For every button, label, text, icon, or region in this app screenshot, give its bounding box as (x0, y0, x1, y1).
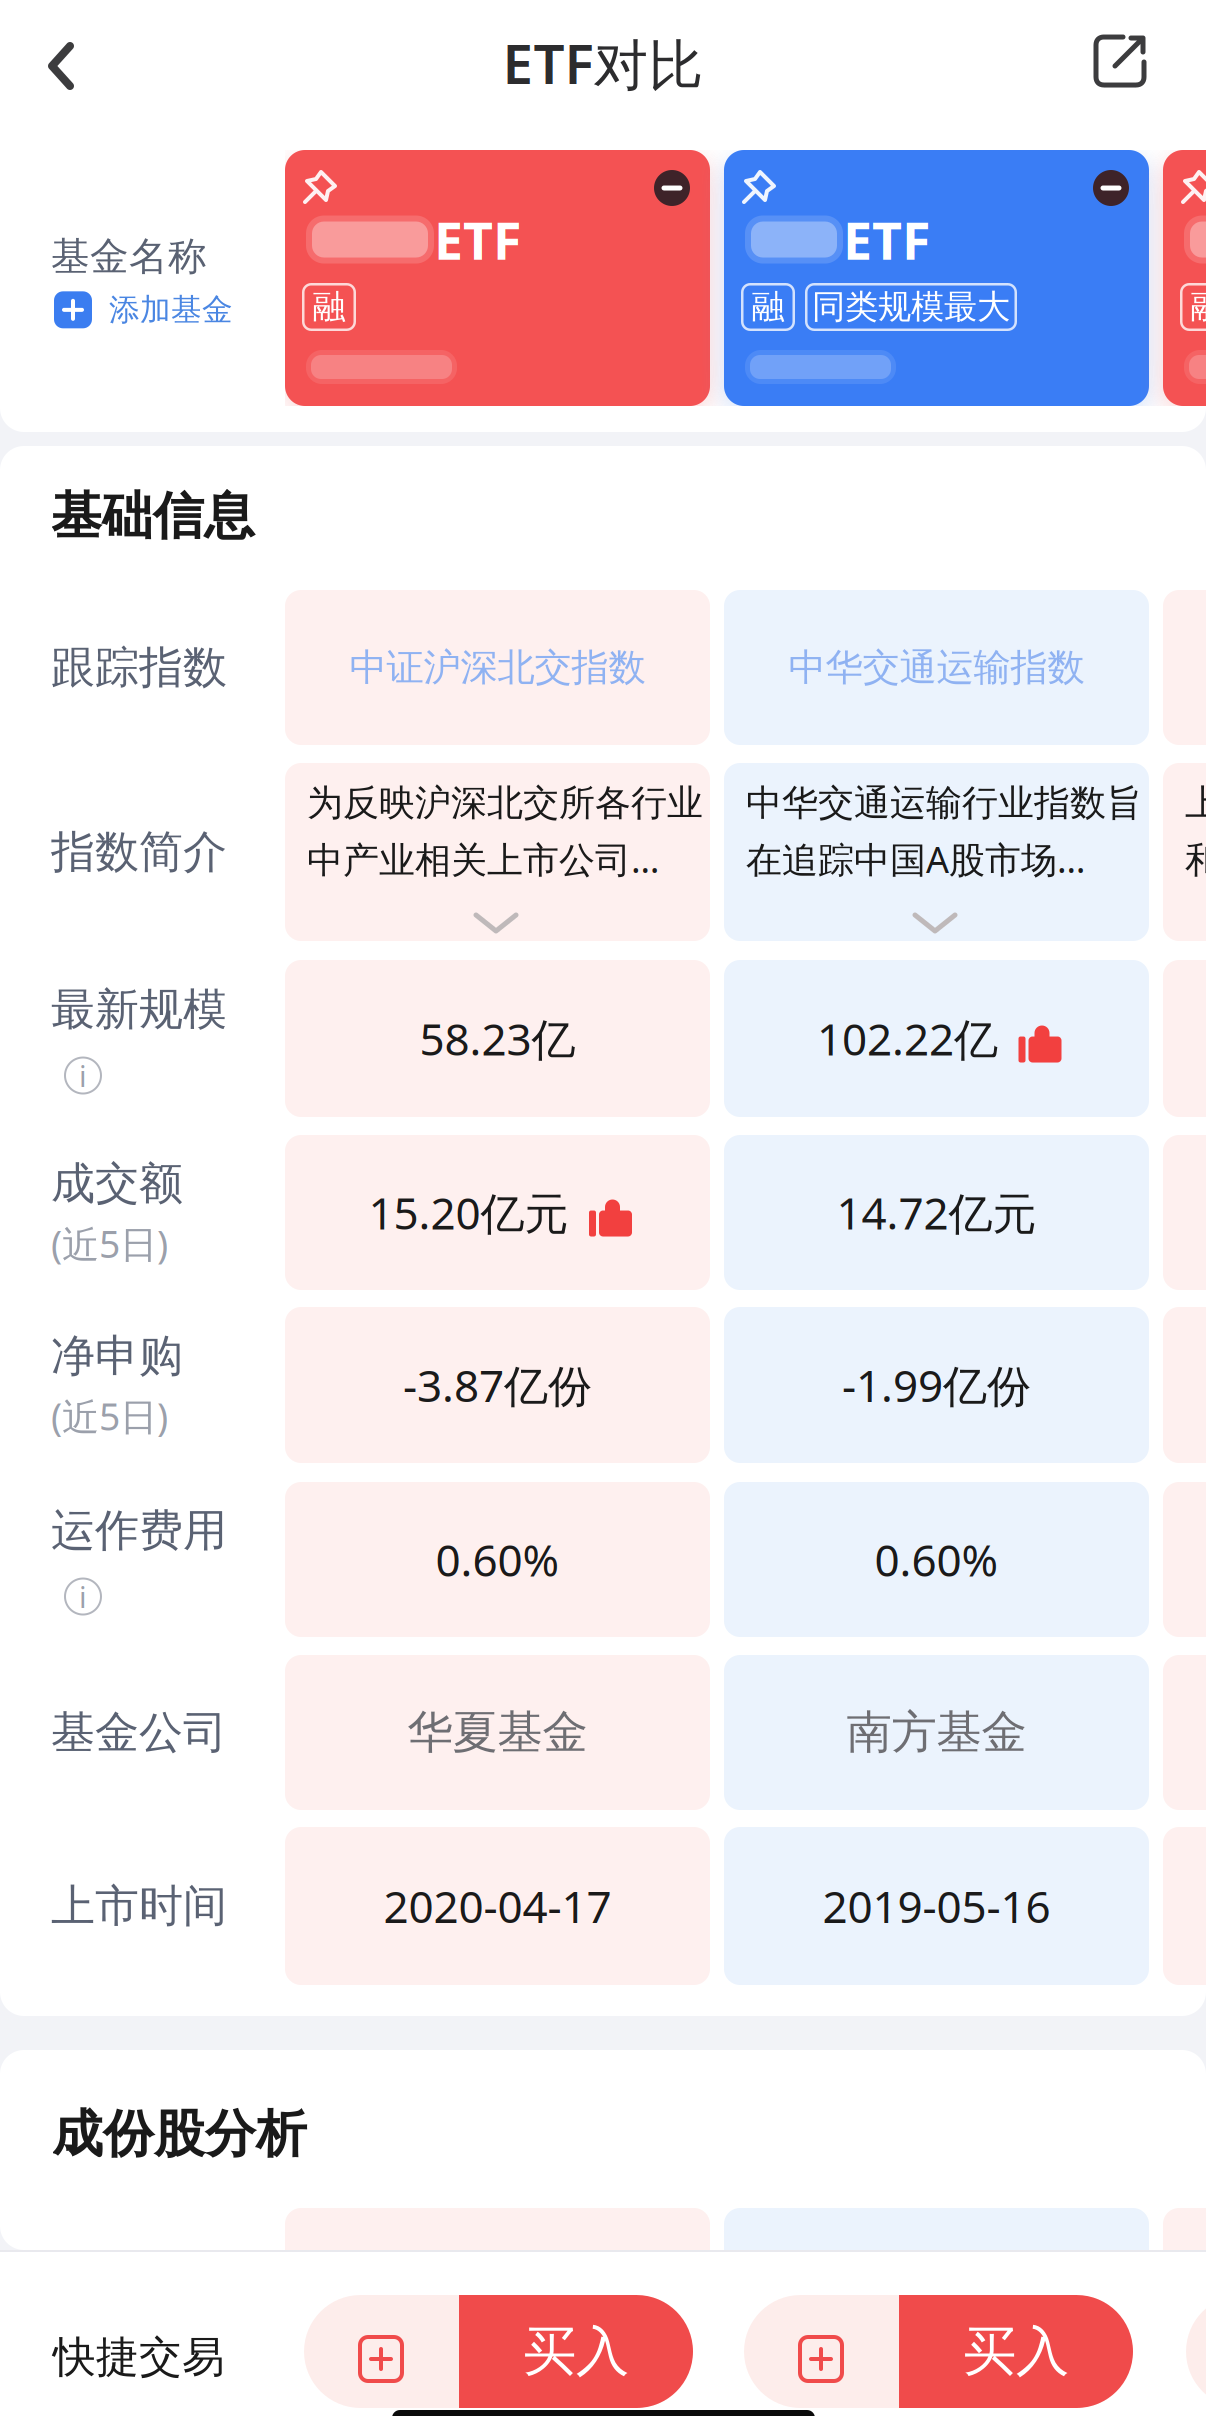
staticText: 基础信息 (51, 485, 255, 547)
staticText: 买入 (963, 2319, 1069, 2384)
button[interactable]: Back (0, 11, 122, 121)
button[interactable]: 添加基金 (54, 291, 233, 329)
staticText: -3.87亿份 (403, 1356, 592, 1414)
staticText: 上市时间 (51, 1879, 227, 1933)
button[interactable]: Remove fund (641, 157, 703, 219)
button[interactable]: Pin fund (1169, 156, 1206, 216)
staticText: -1.99亿份 (842, 1356, 1031, 1414)
staticText: 跟踪指数 (51, 640, 227, 694)
staticText: i (79, 1577, 87, 1616)
button[interactable]: More info (64, 1056, 102, 1094)
staticText: 同类规模最大 (812, 286, 1010, 327)
staticText: 快捷交易 (53, 2331, 225, 2383)
button[interactable]: Remove fund (1080, 157, 1142, 219)
staticText: ETF (843, 205, 931, 274)
staticText: 中华交通运输行业指数旨 (746, 781, 1142, 825)
button[interactable]: Expand description (890, 897, 980, 949)
staticText: 0.60% (874, 1530, 998, 1589)
staticText: 基金名称 (51, 233, 207, 280)
staticText: 最新规模 (51, 982, 227, 1036)
button[interactable]: 买入 (899, 2295, 1133, 2408)
staticText: ETF对比 (502, 27, 703, 99)
button[interactable]: More info (64, 1577, 102, 1615)
staticText: i (79, 1056, 87, 1095)
staticText: 0.60% (435, 1530, 559, 1589)
staticText: 2019-05-16 (822, 1877, 1050, 1935)
staticText: (近5日) (51, 1219, 168, 1268)
staticText: 买入 (523, 2319, 629, 2384)
staticText: 基金公司 (51, 1705, 227, 1759)
staticText: 华夏基金 (407, 1705, 587, 1760)
staticText: 成份股分析 (52, 2103, 307, 2165)
staticText: 上证科创板新一代信息技 (1185, 781, 1206, 825)
staticText: 为反映沪深北交所各行业 (307, 781, 703, 825)
staticText: 在追踪中国A股市场… (746, 835, 1085, 883)
staticText: 中产业相关上市公司… (307, 835, 659, 883)
button[interactable]: Add to watchlist (744, 2295, 899, 2408)
staticText: 添加基金 (109, 291, 233, 329)
staticText: 102.22亿 (817, 1009, 998, 1068)
staticText: 融 (751, 286, 784, 327)
staticText: 融 (312, 286, 345, 327)
staticText: 14.72亿元 (836, 1183, 1036, 1242)
button[interactable]: Add to watchlist (304, 2295, 459, 2408)
staticText: 中华交通运输指数 (788, 645, 1084, 690)
staticText: (近5日) (51, 1391, 168, 1441)
button[interactable]: Add to watchlist (1186, 2295, 1206, 2408)
staticText: 中证沪深北交指数 (349, 645, 645, 690)
staticText: 58.23亿 (419, 1009, 575, 1068)
button[interactable]: Pin fund (730, 156, 790, 216)
staticText: 指数简介 (51, 825, 227, 879)
button[interactable]: Pin fund (291, 156, 351, 216)
staticText: 融 (1190, 286, 1206, 327)
staticText: 净申购 (51, 1329, 183, 1383)
staticText: ETF (434, 205, 522, 274)
staticText: 运作费用 (51, 1503, 227, 1557)
staticText: 成交额 (51, 1157, 183, 1211)
button[interactable]: Share (1034, 6, 1206, 116)
staticText: 15.20亿元 (368, 1183, 568, 1242)
button[interactable]: Expand description (451, 897, 541, 949)
staticText: 和高端装备制造相关… (1185, 835, 1206, 883)
staticText: 南方基金 (846, 1705, 1026, 1760)
staticText: 2020-04-17 (383, 1877, 611, 1935)
button[interactable]: 买入 (459, 2295, 693, 2408)
